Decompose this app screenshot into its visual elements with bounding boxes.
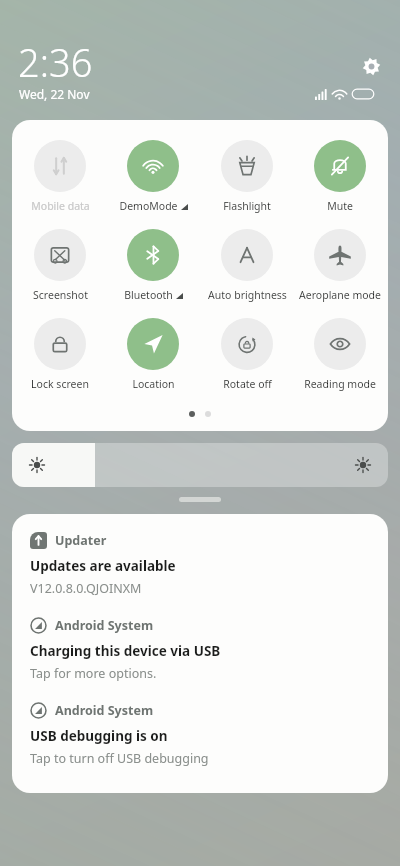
- button[interactable]: Android System: [30, 702, 370, 767]
- staticText: Android System: [55, 617, 154, 634]
- staticText: Flashlight: [223, 199, 271, 213]
- staticText: Mobile data: [31, 199, 90, 213]
- staticText: V12.0.8.0.QJOINXM: [30, 580, 142, 597]
- button[interactable]: Mobile data: [14, 138, 106, 215]
- button[interactable]: Flashlight: [201, 138, 293, 215]
- staticText: Updater: [55, 532, 107, 549]
- staticText: Tap for more options.: [30, 665, 157, 682]
- staticText: Updates are available: [30, 557, 176, 575]
- staticText: Rotate off: [223, 377, 272, 391]
- button[interactable]: Brightness: [12, 443, 388, 487]
- button[interactable]: Android System: [30, 617, 370, 682]
- button[interactable]: Auto brightness: [201, 227, 293, 304]
- staticText: Wed, 22 Nov: [19, 86, 90, 102]
- button[interactable]: Aeroplane mode: [294, 227, 386, 304]
- button[interactable]: DemoMode: [107, 138, 199, 215]
- button[interactable]: Mute: [294, 138, 386, 215]
- staticText: USB debugging is on: [30, 727, 168, 745]
- button[interactable]: Location: [107, 316, 199, 393]
- button[interactable]: Reading mode: [294, 316, 386, 393]
- staticText: Reading mode: [304, 377, 376, 391]
- staticText: 2:36: [18, 36, 93, 88]
- staticText: Screenshot: [33, 288, 88, 302]
- staticText: Mute: [327, 199, 353, 213]
- staticText: Aeroplane mode: [299, 288, 381, 302]
- staticText: Auto brightness: [208, 288, 287, 302]
- button[interactable]: Bluetooth: [107, 227, 199, 304]
- button[interactable]: Rotate off: [201, 316, 293, 393]
- button[interactable]: Lock screen: [14, 316, 106, 393]
- staticText: Lock screen: [31, 377, 89, 391]
- staticText: Bluetooth: [124, 288, 173, 302]
- staticText: Android System: [55, 702, 154, 719]
- button[interactable]: Updater: [30, 532, 370, 597]
- staticText: DemoMode: [119, 199, 178, 213]
- staticText: Tap to turn off USB debugging: [30, 750, 209, 767]
- staticText: Location: [132, 377, 175, 391]
- button[interactable]: Screenshot: [14, 227, 106, 304]
- staticText: Charging this device via USB: [30, 642, 221, 660]
- button[interactable]: Settings: [356, 51, 386, 81]
